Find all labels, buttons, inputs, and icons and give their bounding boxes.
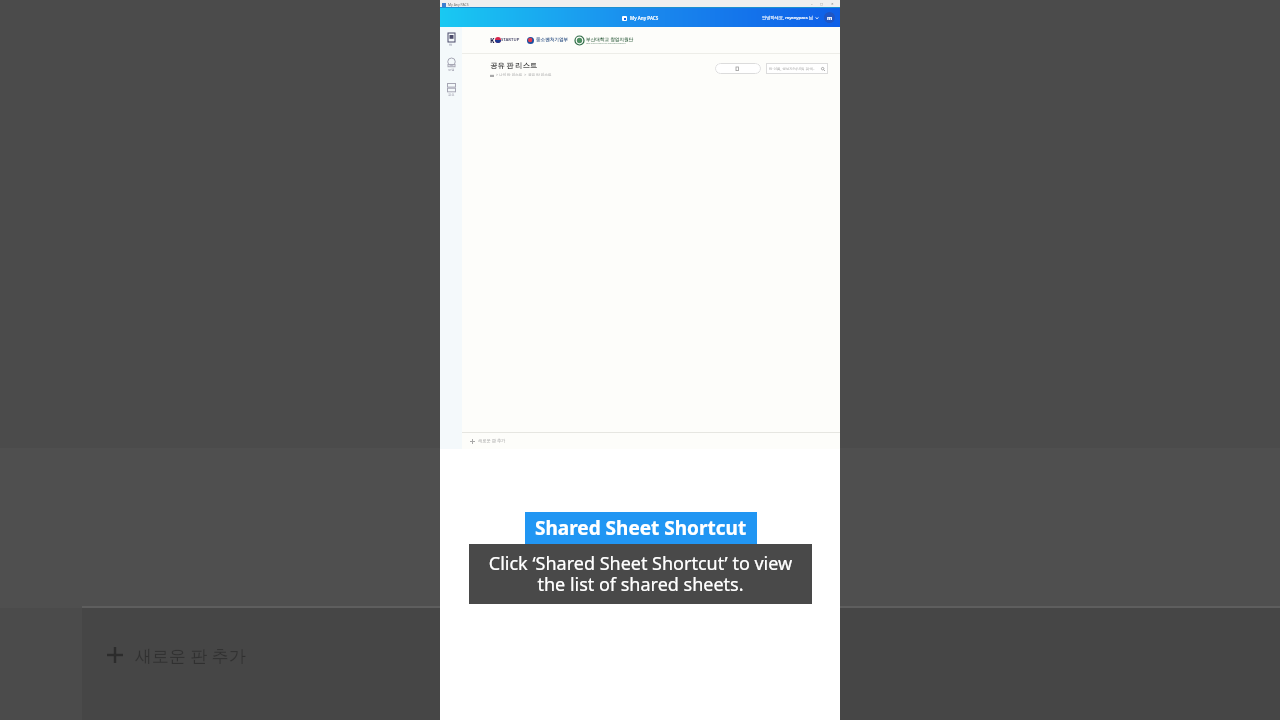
staticText: 판: [449, 43, 453, 47]
staticText: > 나의 판 리스트 > 공유 판 리스트: [496, 72, 552, 77]
staticText: □: [820, 2, 824, 6]
staticText: 판 이름, 생성자/닉네임 검색..: [769, 66, 815, 71]
button[interactable]: My Any PACS: [622, 15, 659, 21]
button[interactable]: 판: [440, 33, 462, 47]
staticText: –: [811, 2, 813, 6]
staticText: m: [827, 14, 833, 21]
button[interactable]: Filter select: [715, 63, 761, 74]
staticText: 새로운 판 추가: [135, 644, 246, 667]
staticText: Click ‘Shared Sheet Shortcut’ to view th…: [469, 551, 812, 597]
staticText: STARTUP: [501, 37, 520, 43]
staticText: Shared Sheet Shortcut: [535, 515, 747, 541]
staticText: 모델: [448, 68, 455, 72]
staticText: K: [490, 36, 495, 45]
button[interactable]: 새로운 판 추가: [462, 433, 840, 449]
button[interactable]: Profile: [824, 12, 835, 23]
staticText: My Any PACS: [448, 2, 469, 7]
staticText: 새로운 판 추가: [478, 438, 506, 444]
button[interactable]: 공유: [440, 83, 462, 97]
button[interactable]: Window control: [817, 0, 827, 8]
button[interactable]: Window control: [827, 0, 837, 8]
staticText: 공유: [448, 93, 455, 97]
button[interactable]: 판 이름, 생성자/닉네임 검색..: [766, 63, 828, 74]
staticText: ✕: [831, 2, 834, 6]
button[interactable]: Window control: [807, 0, 817, 8]
other: Search: [821, 67, 825, 71]
staticText: 안녕하세요, myanypacs 님: [762, 15, 813, 21]
staticText: Task Force San IPACS Startups Support: [586, 42, 626, 45]
staticText: 중소벤처기업부: [536, 37, 569, 43]
button[interactable]: 안녕하세요, myanypacs 님: [762, 12, 835, 23]
staticText: 공유 판 리스트: [490, 60, 537, 70]
staticText: My Any PACS: [630, 15, 659, 21]
button[interactable]: 모델: [440, 58, 462, 72]
staticText: 부산대학교 창업지원단: [586, 36, 634, 42]
